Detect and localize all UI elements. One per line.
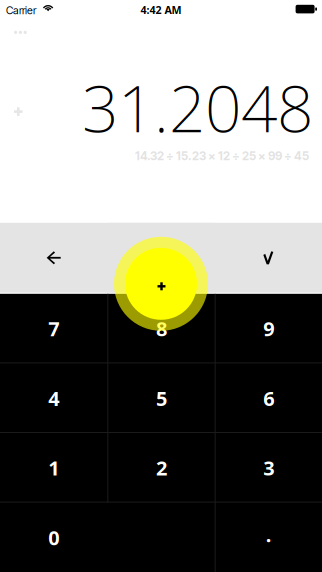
button[interactable]: Add (107, 223, 215, 293)
staticText: 5 (156, 385, 167, 411)
button[interactable]: 0 (0, 503, 215, 572)
staticText: 1 (48, 454, 59, 481)
staticText: 4:42 AM (140, 3, 181, 17)
button[interactable]: Square root (215, 223, 322, 293)
staticText: 0 (48, 524, 59, 551)
staticText: 8 (156, 315, 167, 342)
button[interactable]: 8 (108, 294, 215, 363)
button[interactable]: 7 (0, 294, 107, 363)
button[interactable]: 4 (0, 363, 107, 433)
button[interactable]: Backspace (0, 223, 107, 293)
button[interactable]: 3 (216, 433, 322, 503)
staticText: 14.32 ÷ 15.23 × 12 ÷ 25 × 99 ÷ 45 (135, 149, 309, 163)
staticText: 7 (48, 315, 59, 342)
button[interactable]: . (216, 503, 322, 572)
staticText: 2 (156, 454, 167, 481)
staticText: 3 (263, 454, 274, 481)
button[interactable]: 6 (216, 363, 322, 433)
staticText: 9 (263, 315, 274, 342)
staticText: 6 (263, 385, 274, 411)
button[interactable]: 9 (216, 294, 322, 363)
staticText: 31.2048 (82, 65, 313, 150)
staticText: . (266, 521, 272, 548)
staticText: 4 (48, 385, 59, 411)
button[interactable]: 1 (0, 433, 107, 503)
button[interactable]: 2 (108, 433, 215, 503)
button[interactable]: 5 (108, 363, 215, 433)
button[interactable]: Add (114, 237, 208, 331)
staticText: Carrier (6, 4, 36, 17)
